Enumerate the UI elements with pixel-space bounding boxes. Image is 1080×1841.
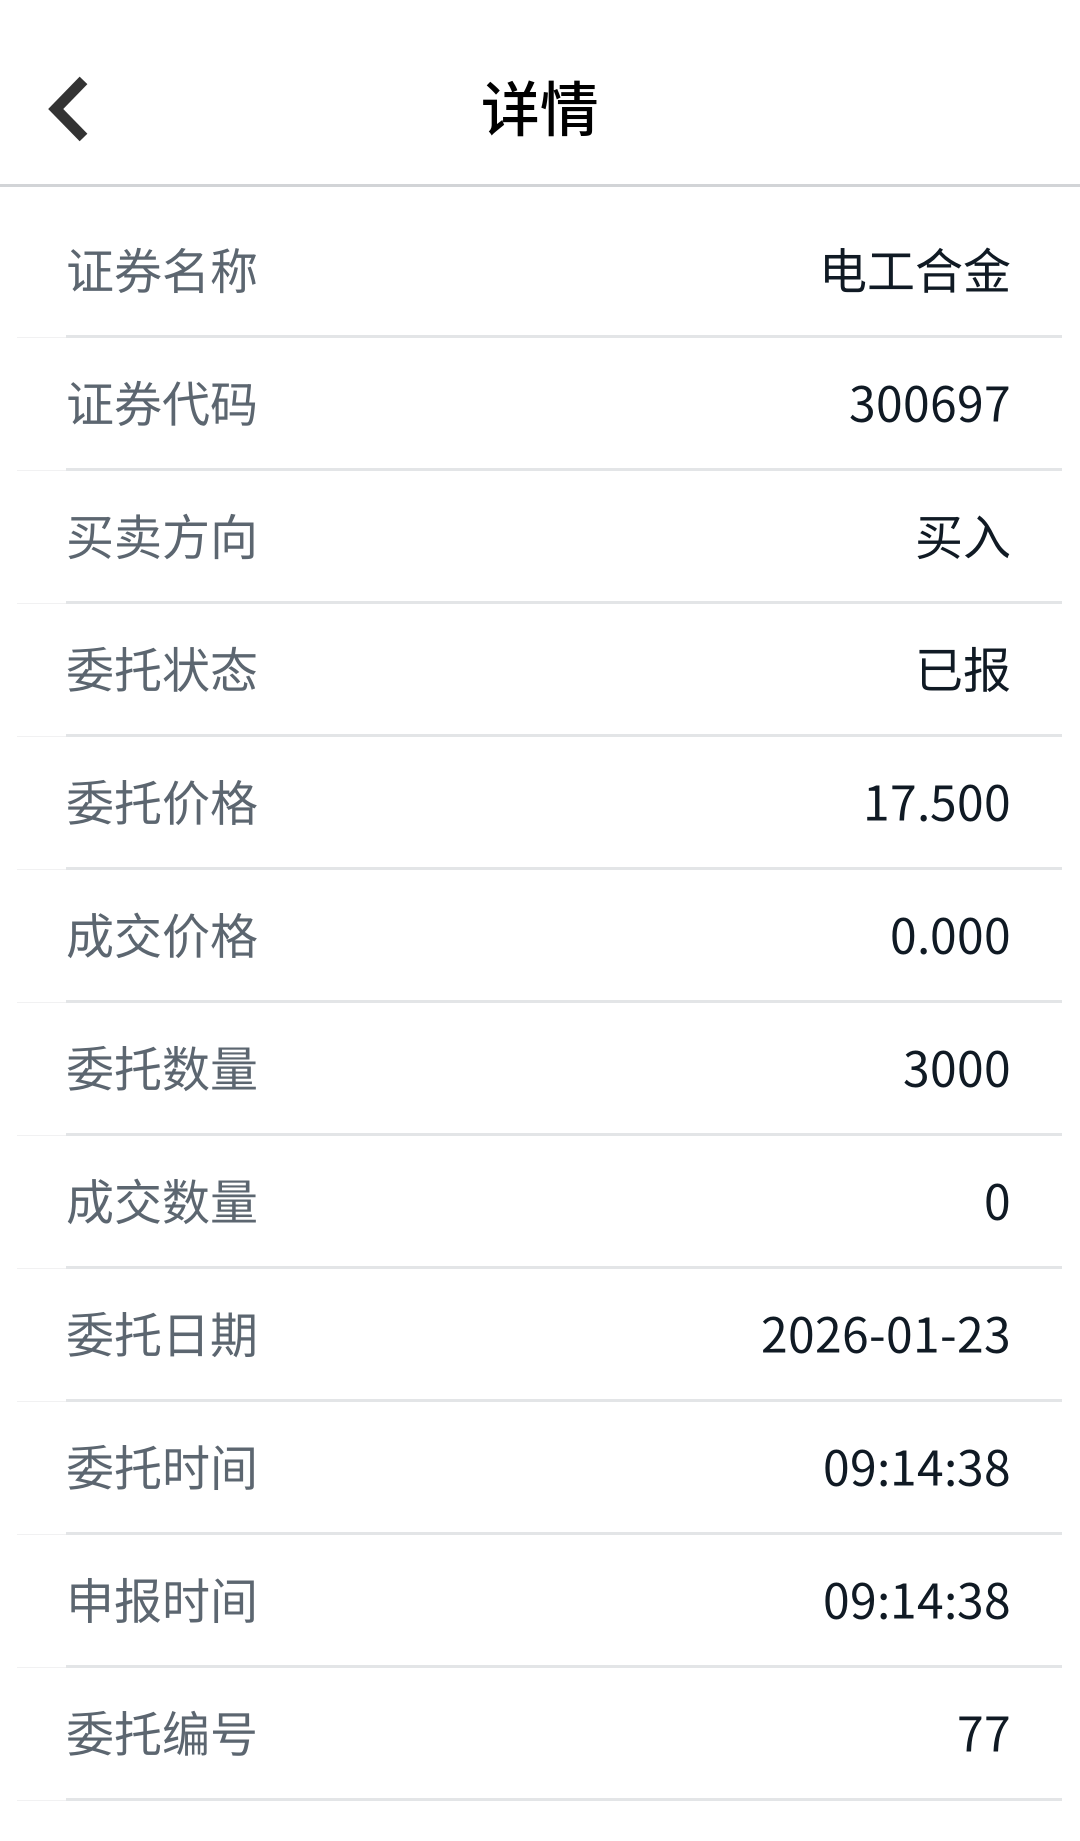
staticText: 0	[984, 1164, 1011, 1233]
staticText: 委托数量	[66, 1031, 258, 1100]
button[interactable]: 委托编号	[0, 1668, 1080, 1801]
button[interactable]: 成交数量	[0, 1136, 1080, 1269]
staticText: 成交价格	[66, 898, 258, 967]
staticText: 已报	[915, 632, 1011, 701]
staticText: 详情	[481, 63, 599, 148]
button[interactable]: 证券名称	[0, 205, 1080, 338]
staticText: 77	[957, 1696, 1011, 1765]
button[interactable]: 委托数量	[0, 1003, 1080, 1136]
staticText: 300697	[849, 366, 1011, 435]
staticText: 2026-01-23	[761, 1297, 1011, 1366]
staticText: 委托日期	[66, 1297, 258, 1366]
button[interactable]: 委托价格	[0, 737, 1080, 870]
staticText: 买卖方向	[66, 499, 258, 568]
staticText: 09:14:38	[823, 1563, 1011, 1632]
staticText: 委托时间	[66, 1430, 258, 1499]
button[interactable]: 成交价格	[0, 870, 1080, 1003]
staticText: 委托状态	[66, 632, 258, 701]
staticText: 3000	[903, 1031, 1011, 1100]
button[interactable]: 申报时间	[0, 1535, 1080, 1668]
staticText: 委托价格	[66, 765, 258, 834]
staticText: 买入	[915, 499, 1011, 568]
staticText: 证券代码	[66, 366, 258, 435]
button[interactable]: 委托日期	[0, 1269, 1080, 1402]
button[interactable]: 证券代码	[0, 338, 1080, 471]
staticText: 电工合金	[819, 233, 1011, 302]
button[interactable]: 买卖方向	[0, 471, 1080, 604]
staticText: 证券名称	[66, 233, 258, 302]
staticText: 0.000	[890, 898, 1011, 967]
staticText: 17.500	[863, 765, 1011, 834]
button[interactable]: 委托状态	[0, 604, 1080, 737]
staticText: 成交数量	[66, 1164, 258, 1233]
staticText: 09:14:38	[823, 1430, 1011, 1499]
button[interactable]: 返回	[0, 0, 136, 187]
button[interactable]: 委托时间	[0, 1402, 1080, 1535]
staticText: 申报时间	[66, 1563, 258, 1632]
staticText: 委托编号	[66, 1696, 258, 1765]
